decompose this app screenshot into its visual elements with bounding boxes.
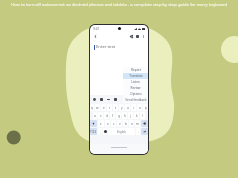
staticText: g bbox=[118, 114, 120, 118]
button[interactable]: e bbox=[101, 104, 106, 111]
button[interactable]: Send feedback bbox=[126, 97, 146, 101]
button[interactable]: Space bbox=[108, 128, 135, 135]
button[interactable]: a bbox=[93, 112, 97, 119]
staticText: n bbox=[131, 122, 133, 126]
button[interactable]: q bbox=[90, 104, 94, 111]
staticText: d bbox=[106, 114, 108, 118]
staticText: j bbox=[130, 114, 131, 118]
staticText: i bbox=[133, 106, 134, 110]
staticText: c bbox=[113, 122, 115, 126]
staticText: v bbox=[119, 122, 121, 126]
staticText: o bbox=[139, 106, 141, 110]
staticText: r bbox=[109, 106, 111, 110]
staticText: Send feedback bbox=[126, 97, 146, 101]
staticText: f bbox=[112, 114, 114, 118]
staticText: . bbox=[138, 130, 139, 134]
staticText: p bbox=[145, 106, 147, 110]
button[interactable]: i bbox=[131, 104, 136, 111]
button[interactable]: Translate bbox=[123, 73, 148, 79]
button[interactable]: Share bbox=[128, 33, 134, 39]
staticText: , bbox=[100, 130, 101, 134]
button[interactable]: Backspace bbox=[141, 120, 148, 127]
button[interactable]: s bbox=[98, 112, 103, 119]
button[interactable]: o bbox=[137, 104, 142, 111]
button[interactable]: p bbox=[143, 104, 148, 111]
staticText: Send feedback bbox=[125, 98, 147, 102]
staticText: s bbox=[100, 114, 102, 118]
button[interactable]: Bookmark bbox=[134, 33, 140, 39]
staticText: w bbox=[96, 106, 99, 110]
button[interactable]: Keyboard tool 3 bbox=[106, 97, 110, 101]
button[interactable]: u bbox=[125, 104, 130, 111]
button[interactable]: More options bbox=[140, 33, 146, 39]
staticText: h bbox=[124, 114, 126, 118]
staticText: l bbox=[142, 114, 143, 118]
button[interactable]: Review bbox=[123, 85, 148, 91]
staticText: q bbox=[91, 106, 93, 110]
button[interactable]: Emoji bbox=[103, 128, 107, 135]
button[interactable]: h bbox=[122, 112, 127, 119]
button[interactable]: Enter bbox=[141, 128, 148, 135]
staticText: ?123 bbox=[90, 130, 97, 134]
staticText: k bbox=[136, 114, 138, 118]
button[interactable]: w bbox=[95, 104, 100, 111]
button[interactable]: , bbox=[98, 128, 102, 135]
staticText: e bbox=[103, 106, 105, 110]
staticText: b bbox=[125, 122, 127, 126]
staticText: x bbox=[107, 122, 109, 126]
staticText: t bbox=[115, 106, 117, 110]
button[interactable]: Shift bbox=[90, 120, 97, 127]
button[interactable]: j bbox=[128, 112, 133, 119]
button[interactable]: l bbox=[140, 112, 145, 119]
button[interactable]: Report bbox=[123, 67, 148, 73]
button[interactable]: k bbox=[134, 112, 139, 119]
staticText: u bbox=[127, 106, 129, 110]
button[interactable]: m bbox=[135, 120, 140, 127]
staticText: y bbox=[121, 106, 123, 110]
staticText: Report bbox=[131, 68, 141, 72]
button[interactable]: d bbox=[104, 112, 109, 119]
button[interactable]: r bbox=[107, 104, 112, 111]
button[interactable]: . bbox=[136, 128, 140, 135]
staticText: z bbox=[100, 122, 102, 126]
button[interactable]: Options bbox=[123, 91, 148, 97]
button[interactable]: c bbox=[111, 120, 116, 127]
staticText: English bbox=[117, 130, 126, 134]
staticText: 9:41 bbox=[93, 27, 100, 31]
button[interactable]: x bbox=[105, 120, 110, 127]
button[interactable]: z bbox=[98, 120, 104, 127]
button[interactable]: Send feedback bbox=[123, 97, 148, 103]
button[interactable]: v bbox=[117, 120, 122, 127]
button[interactable]: n bbox=[129, 120, 134, 127]
button[interactable]: f bbox=[110, 112, 115, 119]
button[interactable]: Keyboard tool 4 bbox=[113, 97, 117, 101]
button[interactable]: ?123 bbox=[90, 128, 97, 135]
button[interactable]: Back bbox=[92, 33, 98, 39]
button[interactable]: Keyboard tool 1 bbox=[92, 97, 96, 101]
staticText: How to turn off autocorrect on Android p… bbox=[1, 2, 237, 8]
staticText: m bbox=[136, 122, 139, 126]
staticText: Listen bbox=[131, 80, 140, 84]
staticText: Review bbox=[130, 86, 141, 90]
staticText: a bbox=[94, 114, 96, 118]
button[interactable]: b bbox=[123, 120, 128, 127]
button[interactable]: y bbox=[119, 104, 124, 111]
button[interactable]: Listen bbox=[123, 79, 148, 85]
button[interactable]: t bbox=[113, 104, 118, 111]
button[interactable]: g bbox=[116, 112, 121, 119]
staticText: Options bbox=[130, 92, 142, 96]
staticText: Enter text bbox=[96, 44, 116, 50]
button[interactable]: Keyboard tool 2 bbox=[99, 97, 103, 101]
staticText: Translate bbox=[129, 74, 143, 78]
